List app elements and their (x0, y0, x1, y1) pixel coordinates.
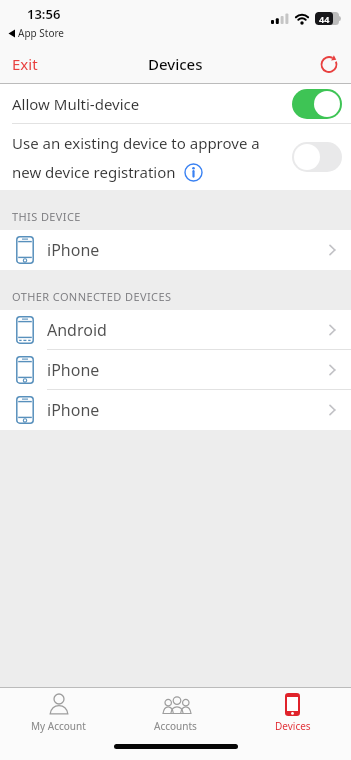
button[interactable]: iPhone (0, 230, 351, 270)
staticText: App Store (18, 26, 65, 40)
staticText: Devices (148, 54, 203, 74)
staticText: THIS DEVICE (12, 209, 81, 224)
button[interactable] (292, 142, 342, 172)
staticText: iPhone (47, 399, 100, 421)
staticText: OTHER CONNECTED DEVICES (12, 289, 172, 304)
button[interactable]: Allow Multi-device (0, 84, 351, 124)
staticText: iPhone (47, 239, 100, 261)
staticText: new device registration (12, 162, 176, 182)
button[interactable]: Use an existing device to approve a (0, 124, 351, 190)
staticText: 44 (319, 13, 330, 25)
button[interactable]: Exit (12, 54, 38, 74)
staticText: iPhone (47, 359, 100, 381)
button[interactable]: Accounts (117, 691, 234, 733)
button[interactable]: Devices (234, 691, 351, 733)
staticText: Use an existing device to approve a (12, 133, 260, 153)
staticText: Android (47, 319, 107, 341)
staticText: Devices (275, 719, 311, 733)
staticText: Accounts (154, 719, 197, 733)
button[interactable] (317, 52, 341, 76)
staticText: 13:56 (27, 5, 61, 23)
staticText: My Account (31, 719, 86, 733)
staticText: Allow Multi-device (12, 94, 140, 114)
button[interactable]: My Account (0, 691, 117, 733)
button[interactable]: Android (0, 310, 351, 350)
button[interactable]: iPhone (0, 350, 351, 390)
button[interactable] (292, 89, 342, 119)
button[interactable]: iPhone (0, 390, 351, 430)
